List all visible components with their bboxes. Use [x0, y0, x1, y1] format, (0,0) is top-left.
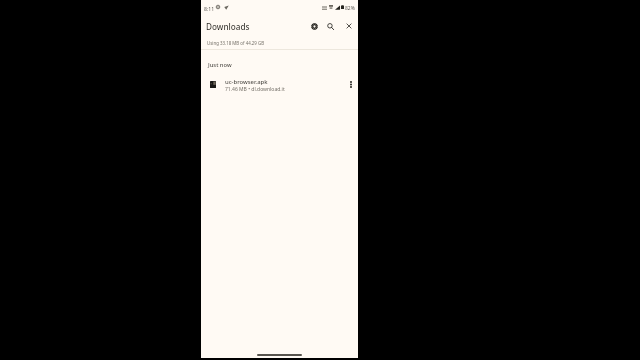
- button[interactable]: Search: [322, 18, 338, 34]
- staticText: 82%: [345, 5, 355, 12]
- staticText: Just now: [208, 61, 232, 69]
- staticText: 8:11: [204, 5, 215, 12]
- button[interactable]: More options: [344, 78, 357, 91]
- button[interactable]: uc-browser.apk: [201, 75, 358, 97]
- button[interactable]: Settings: [306, 18, 322, 34]
- staticText: uc-browser.apk: [225, 78, 268, 86]
- staticText: 71.46 MB • dl.download.it: [225, 86, 285, 93]
- staticText: Downloads: [206, 21, 250, 32]
- button[interactable]: Close: [341, 18, 357, 34]
- staticText: Using 33.18 MB of 44.29 GB: [207, 40, 265, 46]
